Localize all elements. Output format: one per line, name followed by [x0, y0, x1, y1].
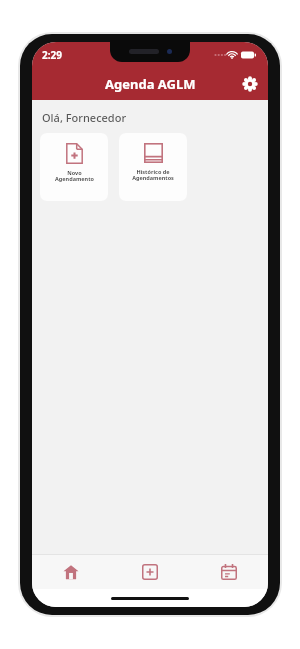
button[interactable]: Settings — [238, 72, 262, 96]
staticText: Histórico de Agendamentos — [132, 168, 174, 182]
staticText: Agenda AGLM — [105, 75, 196, 93]
staticText: Olá, Fornecedor — [42, 110, 127, 125]
staticText: 2:29 — [42, 48, 62, 62]
button[interactable]: Histórico de Agendamentos — [119, 133, 187, 201]
button[interactable]: Calendar — [189, 555, 268, 589]
button[interactable]: Home — [32, 555, 110, 589]
button[interactable]: New appointment — [110, 555, 189, 589]
button[interactable]: Novo Agendamento — [40, 133, 108, 201]
staticText: Novo Agendamento — [55, 169, 94, 183]
